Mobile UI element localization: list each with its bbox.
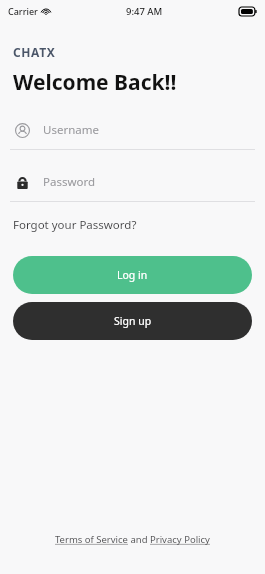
staticText: and (128, 533, 150, 546)
button[interactable]: Terms of Service (55, 533, 128, 546)
button[interactable]: Log in (13, 256, 252, 294)
staticText: CHATX (13, 44, 56, 60)
staticText: Username (43, 122, 99, 138)
button[interactable]: Username (13, 119, 252, 141)
button[interactable]: Password (13, 171, 252, 193)
button[interactable]: Forgot your Password? (13, 214, 137, 236)
staticText: Sign up (114, 314, 152, 328)
staticText: Welcome Back!! (13, 68, 177, 97)
other: Username (15, 123, 30, 138)
staticText: Log in (117, 268, 148, 282)
staticText: Carrier (8, 5, 38, 17)
other: Wi-Fi (41, 6, 51, 16)
button[interactable]: Sign up (13, 302, 252, 340)
staticText: Password (43, 174, 96, 190)
staticText: 9:47 AM (126, 5, 163, 18)
staticText: Forgot your Password? (13, 217, 137, 233)
button[interactable]: Privacy Policy (150, 533, 210, 546)
other: Battery (239, 7, 257, 16)
other: Password (16, 176, 29, 189)
